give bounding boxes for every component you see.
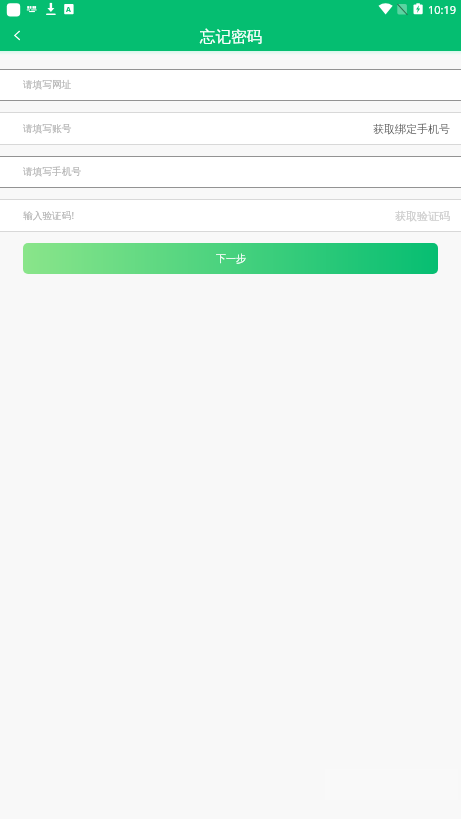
staticText: A — [66, 5, 71, 15]
button[interactable]: 请填写网址 — [23, 70, 450, 100]
staticText: 获取绑定手机号 — [373, 122, 450, 136]
button[interactable]: 请填写账号 — [23, 113, 450, 144]
button[interactable]: 请填写手机号 — [23, 157, 450, 187]
staticText: 请填写手机号 — [23, 166, 82, 178]
staticText: 获取验证码 — [395, 209, 450, 223]
staticText: 下一步 — [216, 252, 246, 265]
button[interactable]: Back — [0, 20, 34, 51]
staticText: 请填写账号 — [23, 123, 72, 135]
button[interactable]: 下一步 — [23, 243, 438, 274]
staticText: 忘记密码 — [200, 27, 262, 47]
staticText: 请填写网址 — [23, 79, 72, 91]
button[interactable]: 输入验证码! — [23, 200, 450, 231]
staticText: 10:19 — [428, 2, 457, 17]
staticText: 输入验证码! — [23, 209, 75, 222]
